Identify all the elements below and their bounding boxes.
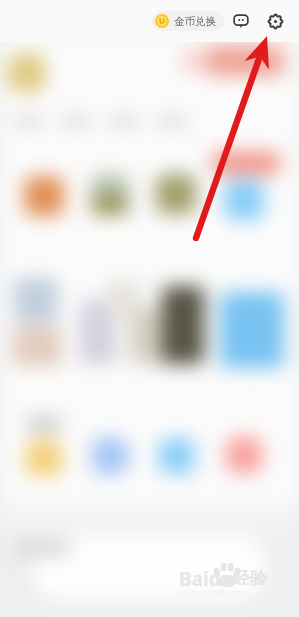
button[interactable]: 金币兑换 <box>152 11 224 31</box>
staticText: 经验 <box>233 568 267 589</box>
staticText: jingyan.baidu.com <box>183 588 244 598</box>
button[interactable]: Messages <box>229 9 253 33</box>
staticText: Baidu <box>179 566 234 592</box>
button[interactable]: Settings <box>263 9 287 33</box>
staticText: 金币兑换 <box>174 15 216 28</box>
